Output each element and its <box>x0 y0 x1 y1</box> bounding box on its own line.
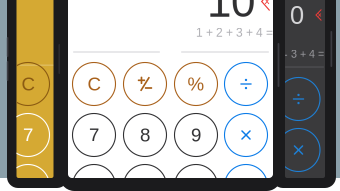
button[interactable]: Multiply <box>224 113 267 156</box>
button[interactable]: 9 <box>174 113 217 156</box>
button[interactable]: % <box>174 62 217 105</box>
button[interactable]: Plus minus <box>123 62 166 105</box>
button[interactable]: C <box>6 62 49 105</box>
button[interactable]: Divide <box>277 77 320 120</box>
staticText: C <box>21 74 34 94</box>
staticText: 5 <box>140 176 150 191</box>
button[interactable]: Divide <box>224 62 267 105</box>
staticText: 10 <box>207 0 255 26</box>
staticText: 7 <box>89 125 99 145</box>
staticText: % <box>187 74 204 94</box>
button[interactable]: Multiply <box>277 128 320 171</box>
staticText: 4 <box>89 176 99 191</box>
staticText: 7 <box>23 125 33 145</box>
button[interactable]: 8 <box>123 113 166 156</box>
staticText: C <box>87 74 100 94</box>
button[interactable]: Delete <box>313 7 324 23</box>
button[interactable]: 4 <box>6 164 49 191</box>
staticText: - 3 + 4 = <box>284 48 324 60</box>
button[interactable]: 7 <box>6 113 49 156</box>
staticText: 0 <box>290 1 304 29</box>
button[interactable]: 5 <box>123 164 166 191</box>
staticText: 1 + 2 + 3 + 4 = <box>196 26 273 39</box>
button[interactable]: 7 <box>72 113 115 156</box>
staticText: 6 <box>191 176 201 191</box>
staticText: 9 <box>191 125 201 145</box>
button[interactable]: Minus <box>224 164 267 191</box>
button[interactable]: 4 <box>72 164 115 191</box>
staticText: 4 <box>23 176 33 191</box>
button[interactable]: Delete <box>258 0 273 14</box>
button[interactable]: 6 <box>174 164 217 191</box>
staticText: 8 <box>140 125 150 145</box>
button[interactable]: C <box>72 62 115 105</box>
